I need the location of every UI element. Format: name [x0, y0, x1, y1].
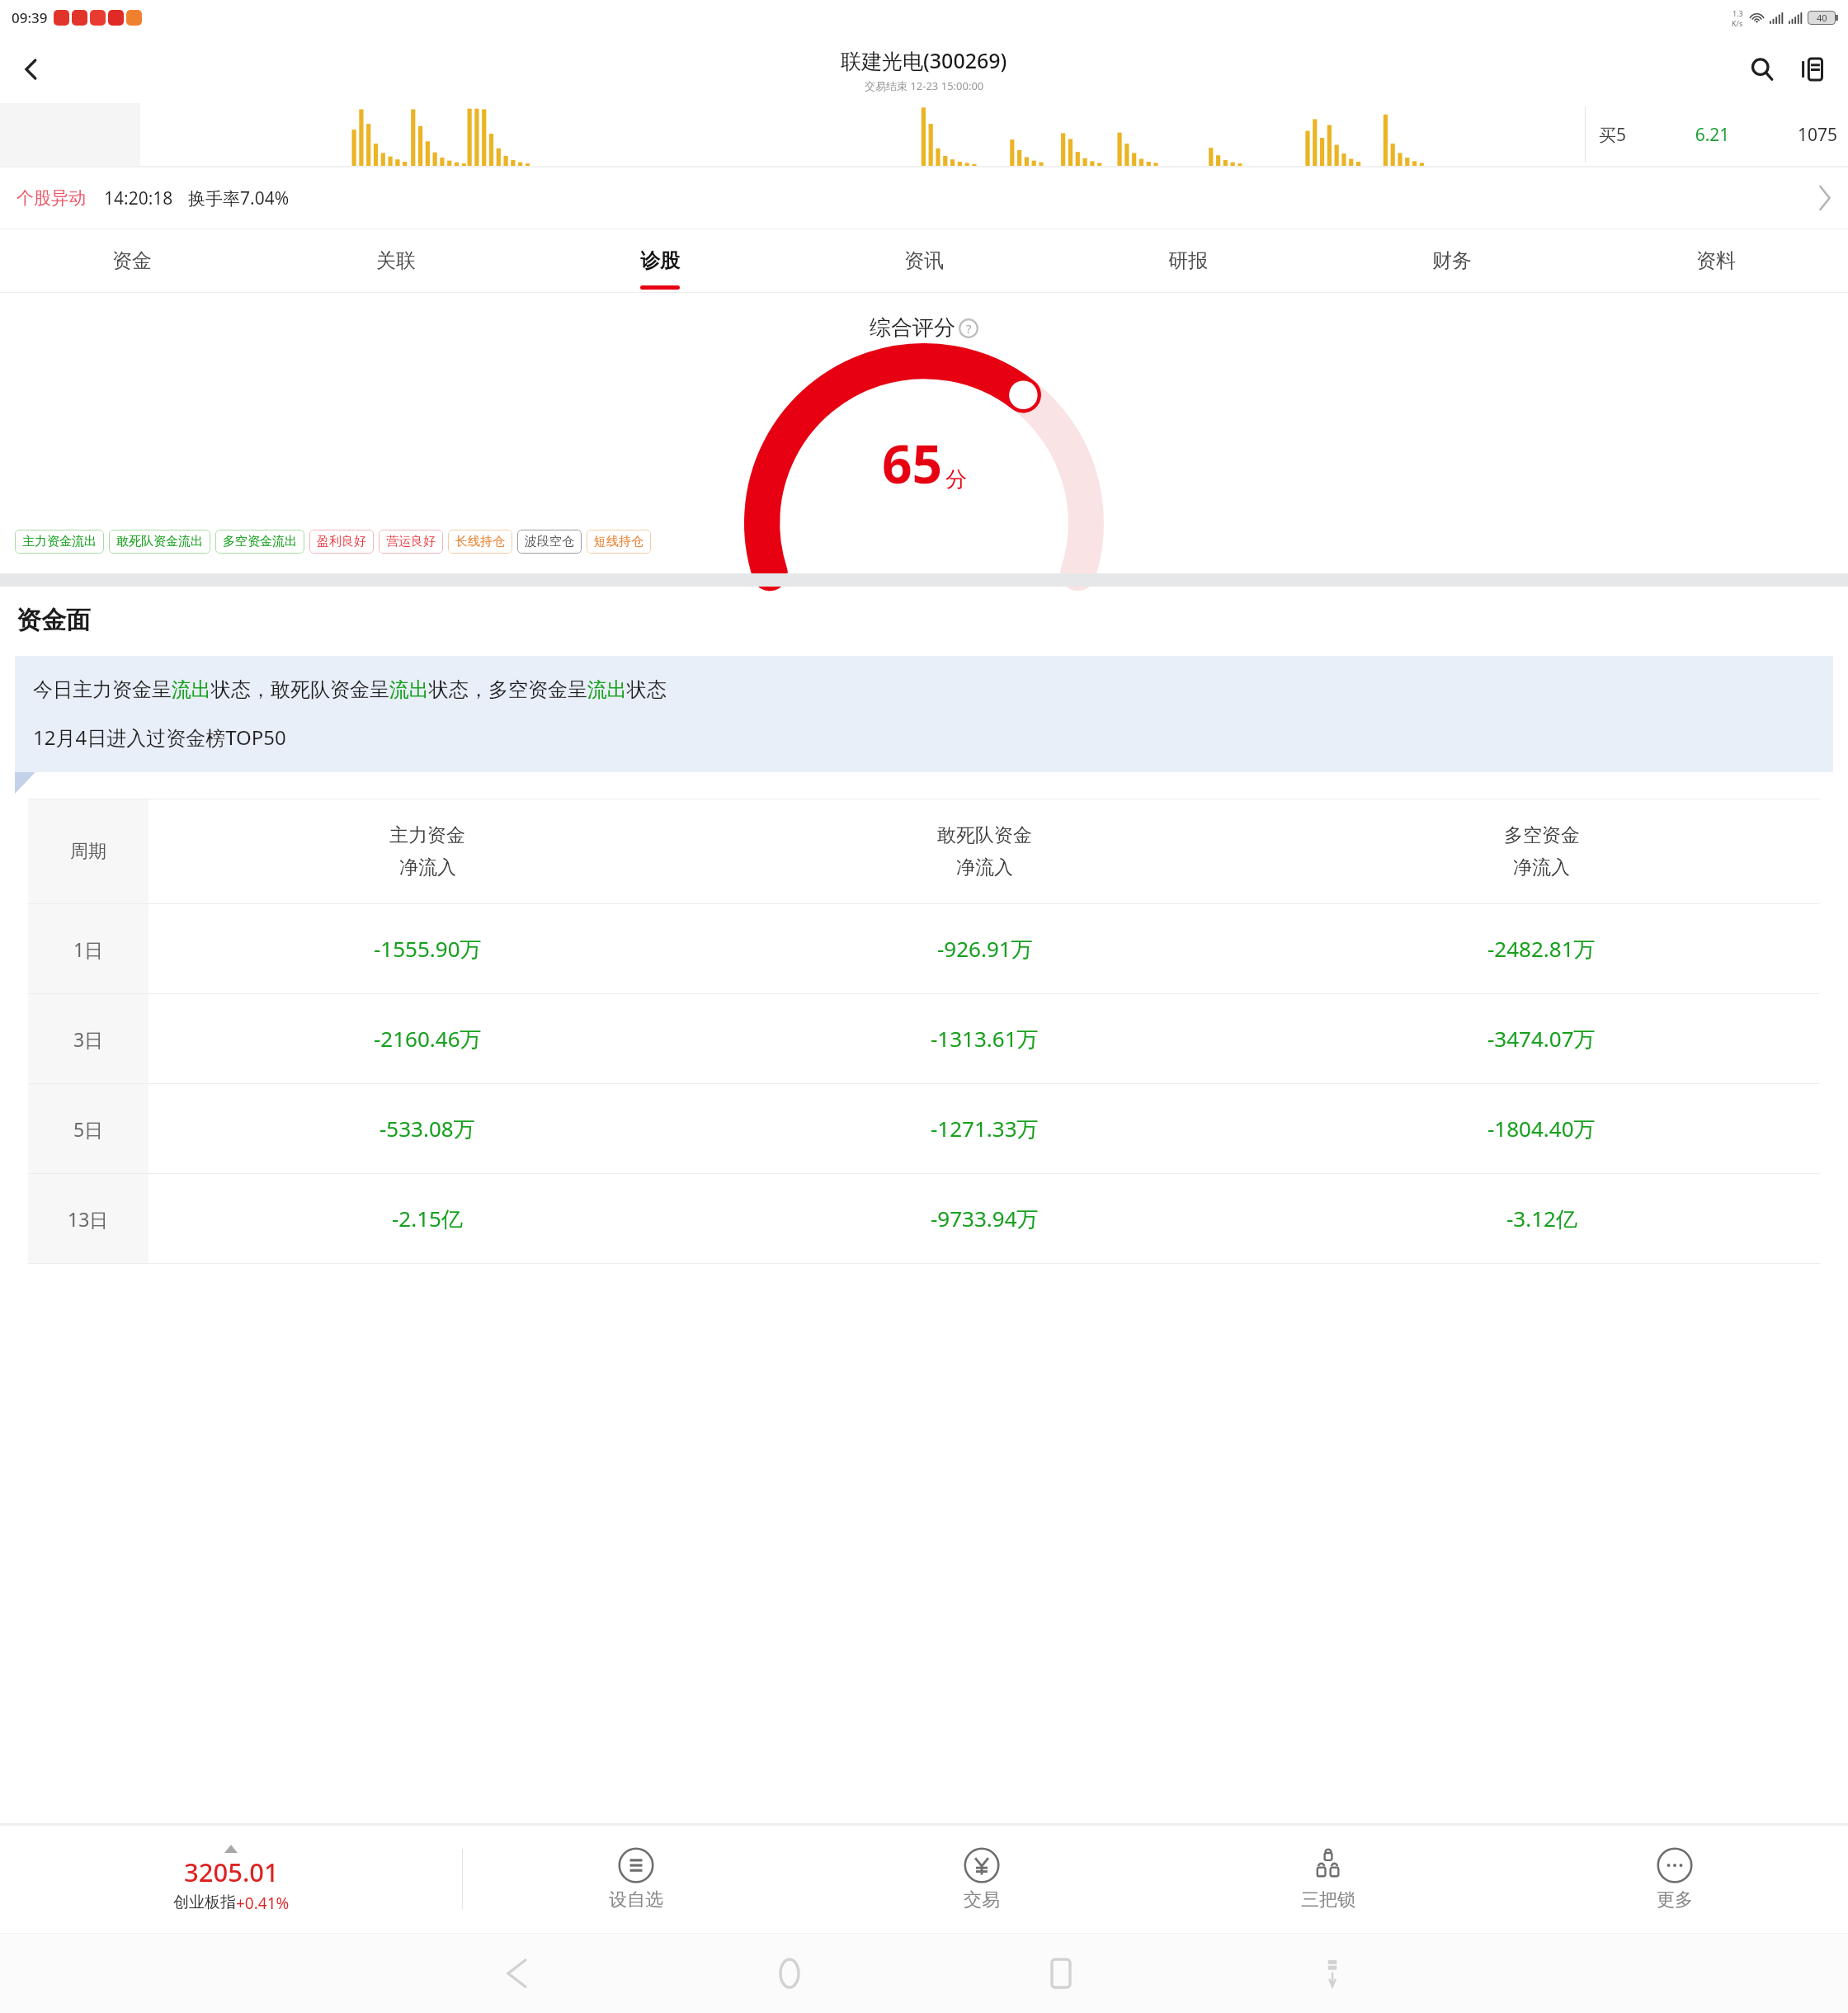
button[interactable]: 3205.01 — [0, 1826, 462, 1933]
button[interactable]: 主力资金流出 — [15, 530, 104, 554]
staticText: 联建光电(300269) — [841, 46, 1007, 74]
button[interactable]: 个股异动 — [0, 167, 1848, 229]
staticText: -1271.33万 — [931, 1114, 1039, 1143]
staticText: 5日 — [73, 1116, 104, 1142]
staticText: 6.21 — [1627, 123, 1798, 147]
button[interactable]: Home — [653, 1934, 925, 2013]
button[interactable]: 营运良好 — [379, 530, 443, 554]
staticText: 盈利良好 — [317, 534, 366, 549]
button[interactable]: 短线持仓 — [587, 530, 651, 554]
staticText: 13日 — [68, 1206, 109, 1232]
button[interactable]: 资料 — [1584, 229, 1848, 292]
staticText: 净流入 — [1513, 856, 1570, 879]
button[interactable]: 研报 — [1056, 229, 1320, 292]
staticText: -1804.40万 — [1487, 1114, 1596, 1143]
staticText: 资讯 — [904, 248, 944, 273]
staticText: 1.3 — [1732, 8, 1743, 18]
staticText: -3474.07万 — [1487, 1024, 1596, 1054]
staticText: 今日主力资金呈流出状态，敢死队资金呈流出状态，多空资金呈流出状态 — [33, 677, 667, 702]
staticText: 研报 — [1168, 248, 1208, 273]
staticText: -3.12亿 — [1506, 1204, 1577, 1233]
staticText: 资金面 — [16, 605, 91, 636]
staticText: -926.91万 — [937, 934, 1033, 964]
staticText: -2482.81万 — [1487, 934, 1596, 964]
staticText: 净流入 — [399, 856, 456, 879]
button[interactable]: 财务 — [1320, 229, 1584, 292]
button[interactable]: Search — [1741, 48, 1784, 91]
button[interactable]: Back — [8, 46, 54, 92]
button[interactable]: 波段空仓 — [517, 530, 582, 554]
staticText: 多空资金 — [1504, 823, 1580, 847]
staticText: 40 — [1817, 12, 1827, 24]
staticText: 诊股 — [640, 248, 680, 273]
staticText: 分 — [945, 466, 967, 493]
button[interactable]: 长线持仓 — [448, 530, 512, 554]
staticText: 换手率7.04% — [188, 186, 290, 210]
button[interactable]: 关联 — [264, 229, 528, 292]
staticText: ? — [966, 320, 972, 337]
staticText: 65 — [882, 427, 943, 499]
button[interactable]: Layout — [1790, 48, 1833, 91]
staticText: 交易结束 12-23 15:00:00 — [865, 78, 984, 93]
staticText: 三把锁 — [1301, 1888, 1355, 1912]
button[interactable]: Help — [958, 318, 979, 339]
button[interactable]: 交易 — [808, 1826, 1155, 1933]
button[interactable]: Recents — [925, 1934, 1196, 2013]
staticText: -9733.94万 — [931, 1204, 1039, 1233]
staticText: 个股异动 — [16, 187, 86, 209]
staticText: 14:20:18 — [104, 186, 173, 210]
button[interactable]: 多空资金流出 — [215, 530, 304, 554]
staticText: 综合评分 — [870, 314, 955, 342]
staticText: -1555.90万 — [374, 934, 482, 964]
staticText: 3日 — [73, 1026, 104, 1052]
staticText: K/s — [1732, 18, 1743, 28]
staticText: 主力资金流出 — [22, 534, 97, 549]
staticText: 设自选 — [609, 1888, 663, 1912]
staticText: 财务 — [1432, 248, 1472, 273]
staticText: 短线持仓 — [594, 534, 643, 549]
staticText: +0.41% — [236, 1893, 290, 1914]
button[interactable]: 资讯 — [792, 229, 1056, 292]
staticText: 创业板指 — [173, 1893, 236, 1912]
staticText: 敢死队资金流出 — [116, 534, 203, 549]
staticText: 12月4日进入过资金榜TOP50 — [33, 724, 286, 751]
staticText: 营运良好 — [386, 534, 436, 549]
staticText: 买5 — [1599, 123, 1627, 147]
staticText: 更多 — [1657, 1888, 1693, 1912]
button[interactable]: 诊股 — [528, 229, 792, 292]
staticText: 波段空仓 — [525, 534, 574, 549]
button[interactable]: 敢死队资金流出 — [109, 530, 210, 554]
button[interactable]: 更多 — [1501, 1826, 1848, 1933]
staticText: -2.15亿 — [392, 1204, 463, 1233]
staticText: 敢死队资金 — [937, 823, 1032, 847]
staticText: 1日 — [73, 936, 104, 962]
button[interactable]: 买5 — [1586, 103, 1848, 166]
staticText: 多空资金流出 — [223, 534, 297, 549]
staticText: 09:39 — [12, 8, 48, 27]
staticText: -2160.46万 — [374, 1024, 482, 1054]
button[interactable]: 盈利良好 — [309, 530, 374, 554]
staticText: 周期 — [70, 840, 106, 863]
staticText: -533.08万 — [379, 1114, 475, 1143]
staticText: 交易 — [964, 1888, 1000, 1912]
staticText: 3205.01 — [184, 1855, 279, 1889]
staticText: 长线持仓 — [455, 534, 505, 549]
staticText: 关联 — [376, 248, 416, 273]
staticText: 主力资金 — [389, 823, 465, 847]
staticText: 净流入 — [956, 856, 1013, 879]
staticText: -1313.61万 — [931, 1024, 1039, 1054]
staticText: 1075 — [1798, 123, 1838, 147]
button[interactable]: 设自选 — [463, 1826, 808, 1933]
staticText: 资金 — [112, 248, 152, 273]
staticText: 资料 — [1696, 248, 1736, 273]
button[interactable]: 三把锁 — [1155, 1826, 1501, 1933]
button[interactable]: 资金 — [0, 229, 264, 292]
